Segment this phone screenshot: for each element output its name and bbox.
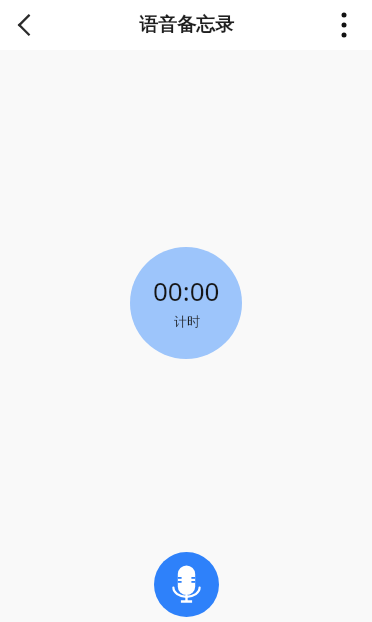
button[interactable]: Record (154, 552, 219, 617)
button[interactable]: Back (2, 3, 46, 47)
staticText: 00:00 (153, 273, 220, 308)
button[interactable]: More options (322, 3, 366, 47)
staticText: 语音备忘录 (139, 13, 234, 37)
button[interactable]: 00:00 (130, 247, 242, 359)
staticText: 计时 (174, 313, 200, 329)
